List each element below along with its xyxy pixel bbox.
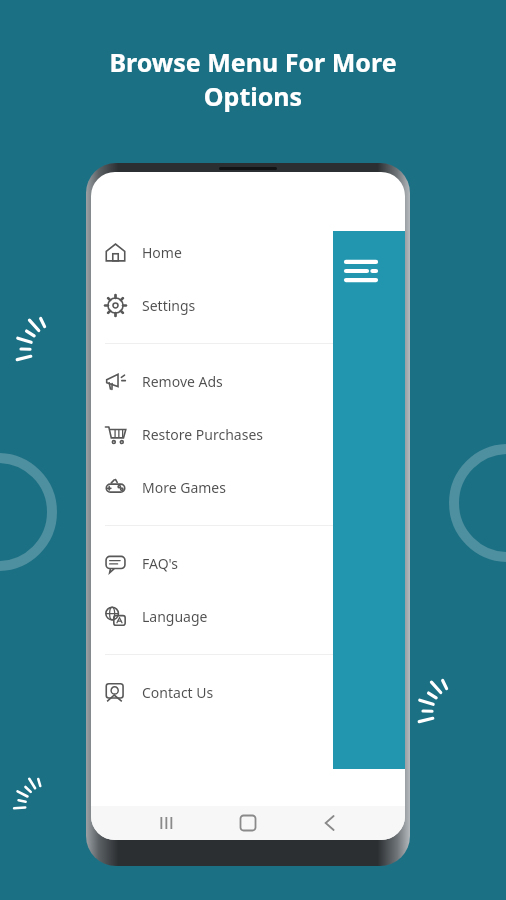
staticText: Settings	[142, 296, 196, 315]
button[interactable]: Language	[91, 590, 405, 643]
button[interactable]: Restore Purchases	[91, 408, 405, 461]
staticText: Restore Purchases	[142, 425, 264, 444]
staticText: More Games	[142, 478, 226, 497]
button[interactable]: Remove Ads	[91, 355, 405, 408]
staticText: Contact Us	[142, 683, 214, 702]
button[interactable]: FAQ's	[91, 537, 405, 590]
staticText: FAQ's	[142, 554, 179, 573]
staticText: Remove Ads	[142, 372, 223, 391]
staticText: Language	[142, 607, 208, 626]
staticText: Browse Menu For More Options	[18, 45, 488, 114]
staticText: Home	[142, 243, 182, 262]
button[interactable]: Open navigation menu	[333, 231, 405, 769]
button[interactable]: Home	[91, 226, 405, 279]
button[interactable]: More Games	[91, 461, 405, 514]
button[interactable]: Contact Us	[91, 666, 405, 719]
button[interactable]: Settings	[91, 279, 405, 332]
